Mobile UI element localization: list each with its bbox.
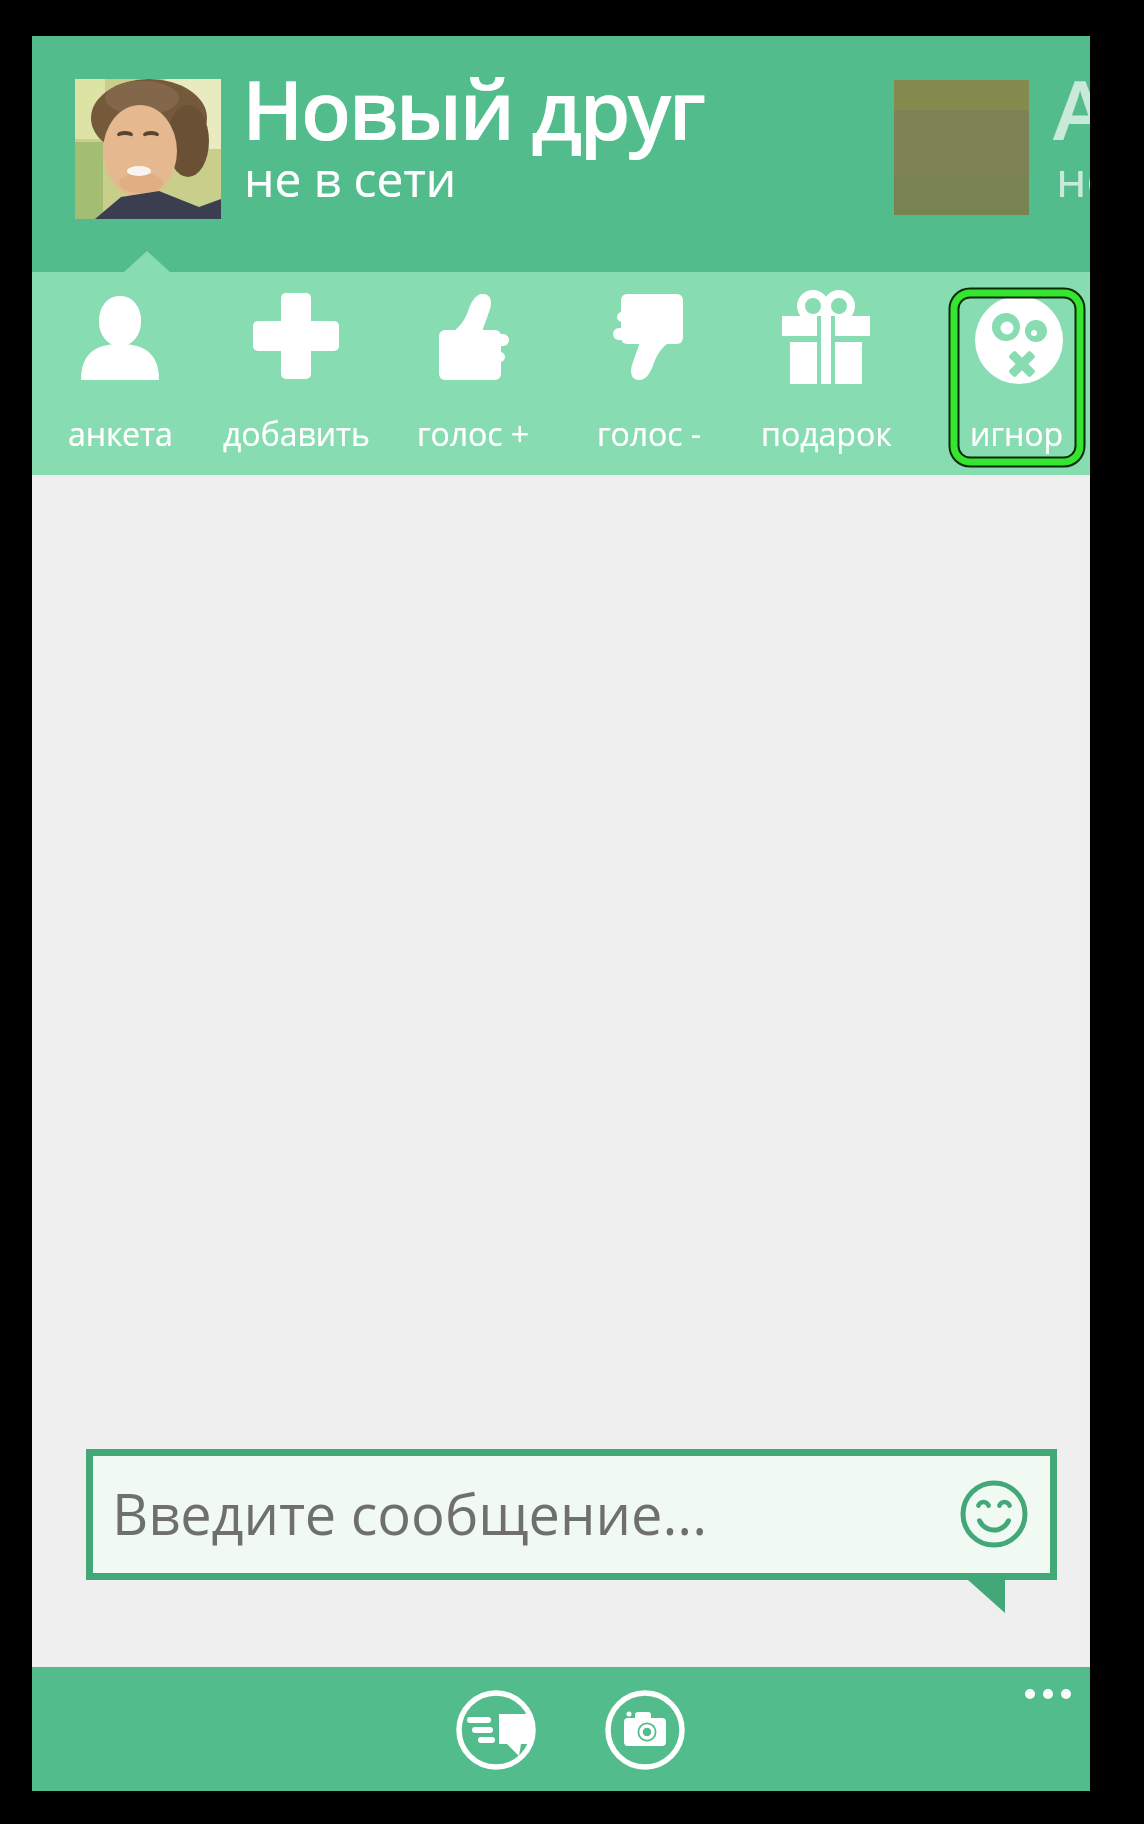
button[interactable] [962, 1482, 1026, 1546]
staticText: Новый друг [242, 52, 704, 164]
button[interactable]: анкета [32, 278, 208, 470]
staticText: анкета [68, 412, 173, 456]
staticText: голос - [597, 412, 702, 456]
staticText: игнор [970, 412, 1064, 456]
staticText: не [1056, 146, 1114, 211]
staticText: Введите сообщение... [112, 1475, 708, 1551]
staticText: подарок [761, 412, 892, 456]
button[interactable] [456, 1690, 536, 1770]
button[interactable] [1018, 1682, 1078, 1706]
staticText: добавить [223, 412, 370, 456]
staticText: А [1053, 52, 1108, 164]
button[interactable]: игнор [929, 278, 1105, 470]
staticText: голос + [417, 412, 530, 456]
staticText: не в сети [244, 146, 457, 211]
button[interactable]: добавить [208, 278, 384, 470]
button[interactable] [86, 1449, 1057, 1580]
button[interactable]: голос - [561, 278, 737, 470]
button[interactable]: голос + [385, 278, 561, 470]
button[interactable]: подарок [738, 278, 914, 470]
button[interactable] [75, 79, 221, 219]
button[interactable] [605, 1690, 685, 1770]
